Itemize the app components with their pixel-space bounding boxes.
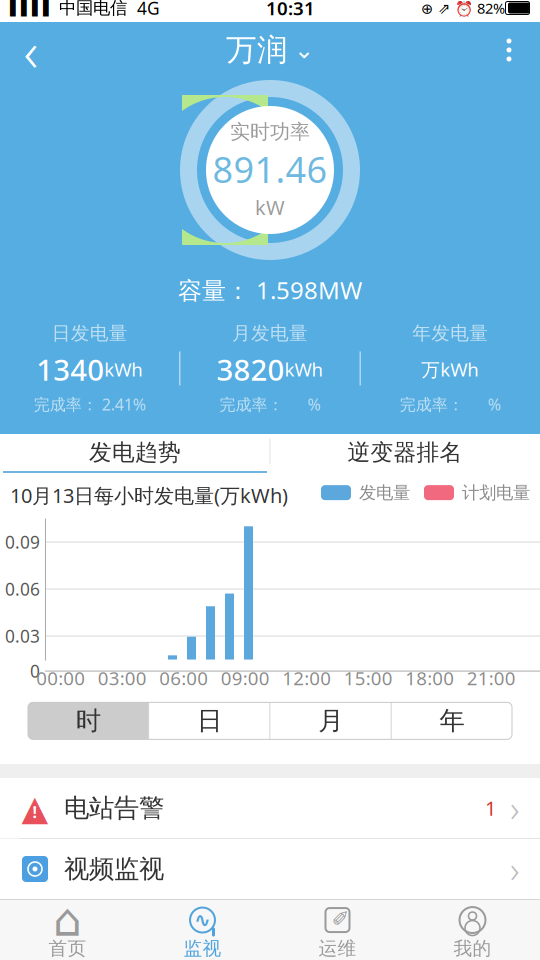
staticText: 891.46: [212, 145, 327, 193]
staticText: 运维: [318, 937, 356, 960]
staticText: 12:00: [282, 666, 331, 690]
button[interactable]: 我的: [405, 900, 540, 960]
staticText: 万kWh: [421, 357, 479, 382]
staticText: 1340: [36, 350, 104, 389]
staticText: 计划电量: [462, 482, 530, 503]
staticText: 18:00: [405, 666, 454, 690]
staticText: 万润: [226, 31, 288, 69]
staticText: 1: [485, 795, 496, 821]
staticText: kWh: [284, 357, 323, 382]
staticText: 电站告警: [64, 792, 164, 823]
staticText: 09:00: [221, 666, 270, 690]
staticText: 我的: [453, 937, 491, 960]
button[interactable]: 时: [28, 702, 148, 739]
staticText: kWh: [104, 357, 143, 382]
staticText: 完成率： %: [400, 394, 501, 415]
staticText: ⌄: [294, 36, 314, 64]
staticText: 00:00: [36, 666, 85, 690]
staticText: ∿: [194, 909, 211, 931]
button[interactable]: 万润: [218, 22, 322, 78]
button[interactable]: 视频监视: [0, 839, 540, 899]
staticText: 逆变器排名: [347, 439, 462, 466]
button[interactable]: ▲: [0, 778, 540, 838]
button[interactable]: 年: [392, 702, 512, 739]
staticText: ▲: [21, 788, 48, 828]
staticText: ⊕ ⇗ ⏰ 82%: [421, 0, 505, 18]
staticText: 03:00: [98, 666, 147, 690]
staticText: 年发电量: [412, 322, 488, 345]
staticText: 时: [76, 705, 101, 736]
staticText: 视频监视: [64, 853, 164, 884]
staticText: ›: [510, 784, 520, 832]
staticText: 完成率： 2.41%: [34, 394, 146, 415]
staticText: 3820: [216, 350, 284, 389]
staticText: 监视: [183, 937, 221, 960]
button[interactable]: ∿: [135, 900, 270, 960]
staticText: 15:00: [344, 666, 393, 690]
staticText: 10:31: [266, 0, 315, 20]
button[interactable]: 月: [270, 702, 391, 739]
staticText: ⌂: [53, 894, 82, 946]
staticText: 0.06: [5, 578, 40, 601]
staticText: !: [32, 801, 37, 823]
button[interactable]: 日: [149, 702, 269, 739]
staticText: ‹: [23, 13, 38, 87]
button[interactable]: More options: [478, 22, 540, 78]
staticText: 容量： 1.598MW: [178, 274, 362, 306]
button[interactable]: ⌂: [0, 900, 135, 960]
staticText: 06:00: [159, 666, 208, 690]
staticText: 日发电量: [52, 322, 128, 345]
staticText: 实时功率: [230, 119, 310, 144]
staticText: 中国电信: [54, 0, 127, 19]
staticText: 发电量: [359, 482, 410, 503]
staticText: 0.03: [5, 625, 40, 648]
staticText: 月发电量: [232, 322, 308, 345]
staticText: 21:00: [467, 666, 516, 690]
staticText: 首页: [48, 937, 86, 960]
staticText: 年: [439, 705, 464, 736]
staticText: 0: [30, 660, 40, 683]
staticText: ›: [510, 845, 520, 893]
staticText: 日: [197, 705, 222, 736]
staticText: kW: [255, 194, 285, 220]
staticText: ✐: [331, 907, 349, 931]
staticText: 4G: [127, 0, 160, 19]
staticText: 月: [318, 705, 343, 736]
staticText: 10月13日每小时发电量(万kWh): [10, 482, 288, 509]
staticText: 完成率： %: [219, 394, 320, 415]
staticText: ▌▌▌▌: [10, 0, 54, 16]
button[interactable]: ✐: [270, 900, 405, 960]
staticText: 0.09: [5, 531, 40, 554]
button[interactable]: 发电趋势: [0, 434, 270, 473]
button[interactable]: Back: [0, 22, 62, 78]
staticText: 发电趋势: [89, 439, 181, 466]
button[interactable]: 逆变器排名: [270, 434, 540, 473]
